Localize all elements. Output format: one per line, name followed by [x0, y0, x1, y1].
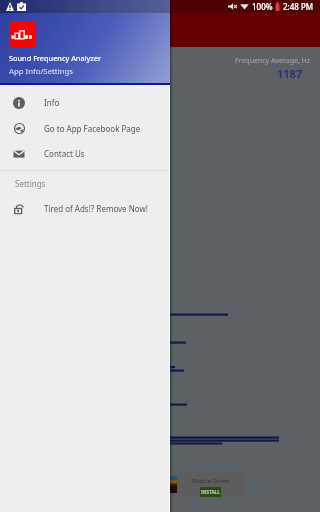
staticText: Tired of Ads!? Remove Now! — [44, 203, 148, 214]
other: Contact us — [13, 148, 25, 160]
staticText: 1187 — [277, 66, 303, 81]
other: Go to App Facebook Page — [14, 123, 25, 134]
staticText: Contact Us — [44, 148, 85, 159]
staticText: Go to App Facebook Page — [44, 123, 141, 134]
staticText: App Info/Settings — [9, 66, 74, 77]
other: Info — [13, 97, 25, 109]
button[interactable]: Remove ads — [0, 196, 170, 221]
button[interactable]: Go to App Facebook Page — [0, 116, 170, 141]
staticText: Frequency Average, Hz — [235, 56, 311, 66]
button[interactable]: Contact us — [0, 141, 170, 166]
staticText: Mobile Strike — [192, 477, 229, 485]
staticText: Settings — [15, 178, 46, 189]
staticText: INSTALL — [201, 489, 220, 495]
button[interactable]: Info — [0, 90, 170, 115]
staticText: Info — [44, 97, 60, 108]
button[interactable]: Mobile Strike — [165, 472, 245, 497]
staticText: 2:48 PM — [283, 1, 314, 12]
staticText: 100% — [252, 1, 273, 12]
other: Remove ads — [13, 203, 25, 215]
staticText: Sound Frequency Analyzer — [9, 53, 101, 63]
